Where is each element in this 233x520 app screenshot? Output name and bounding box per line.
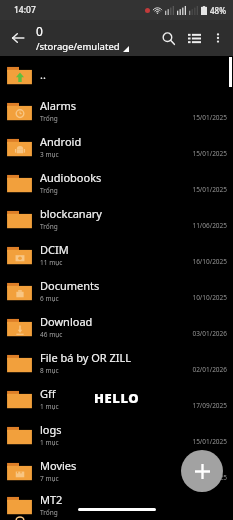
staticText: MT2	[40, 492, 63, 507]
staticText: Alarms	[40, 98, 77, 113]
staticText: 46 mục	[40, 330, 63, 339]
button[interactable]: Alarms	[0, 92, 233, 128]
button[interactable]: Add	[181, 450, 223, 492]
button[interactable]: blockcanary	[0, 200, 233, 236]
button[interactable]: MT2	[0, 488, 233, 520]
staticText: 15/01/2025	[192, 149, 227, 158]
button[interactable]: File bá by OR ZILL	[0, 344, 233, 380]
staticText: 11/06/2025	[192, 221, 227, 230]
staticText: 48%	[210, 5, 226, 16]
button[interactable]: More options	[207, 27, 229, 49]
button[interactable]: Android	[0, 128, 233, 164]
staticText: Trống	[40, 508, 58, 517]
staticText: Download	[40, 314, 93, 329]
staticText: 0	[36, 23, 43, 39]
staticText: Documents	[40, 278, 100, 293]
button[interactable]: DCIM	[0, 236, 233, 272]
staticText: 13/12/2025	[192, 473, 227, 482]
staticText: 10/10/2025	[192, 293, 227, 302]
button[interactable]: 0	[36, 23, 129, 53]
staticText: 15/01/2025	[192, 113, 227, 122]
button[interactable]: Gff	[0, 380, 233, 416]
staticText: 1 mục	[40, 402, 59, 411]
staticText: HELLO	[94, 389, 140, 407]
staticText: Trống	[40, 222, 58, 231]
button[interactable]: ..	[0, 56, 233, 92]
button[interactable]: Back	[4, 24, 32, 52]
staticText: 7 mục	[40, 474, 59, 483]
staticText: Movies	[40, 458, 77, 473]
button[interactable]: Documents	[0, 272, 233, 308]
staticText: 16/10/2025	[192, 257, 227, 266]
staticText: 15/01/2025	[192, 437, 227, 446]
staticText: /storage/emulated	[36, 40, 120, 53]
staticText: DCIM	[40, 242, 69, 257]
staticText: 11 mục	[40, 258, 63, 267]
staticText: 15/01/2025	[192, 185, 227, 194]
button[interactable]: Search	[155, 25, 181, 51]
staticText: File bá by OR ZILL	[40, 350, 132, 365]
staticText: Trống	[40, 186, 58, 195]
staticText: 17/09/2025	[192, 401, 227, 410]
staticText: ..	[40, 67, 46, 82]
button[interactable]: Download	[0, 308, 233, 344]
staticText: 14:07	[14, 4, 36, 16]
button[interactable]: View mode	[181, 25, 207, 51]
staticText: 03/01/2026	[192, 329, 227, 338]
staticText: blockcanary	[40, 206, 102, 221]
staticText: logs	[40, 422, 62, 437]
button[interactable]: Audiobooks	[0, 164, 233, 200]
staticText: Android	[40, 134, 82, 149]
staticText: 8 mục	[40, 366, 59, 375]
staticText: Audiobooks	[40, 170, 102, 185]
staticText: 6 mục	[40, 294, 59, 303]
staticText: 3 mục	[40, 150, 59, 159]
staticText: Trống	[40, 114, 58, 123]
button[interactable]: logs	[0, 416, 233, 452]
button[interactable]: Movies	[0, 452, 233, 488]
staticText: 1 mục	[40, 438, 59, 447]
staticText: Gff	[40, 386, 56, 401]
staticText: 02/01/2026	[192, 365, 227, 374]
